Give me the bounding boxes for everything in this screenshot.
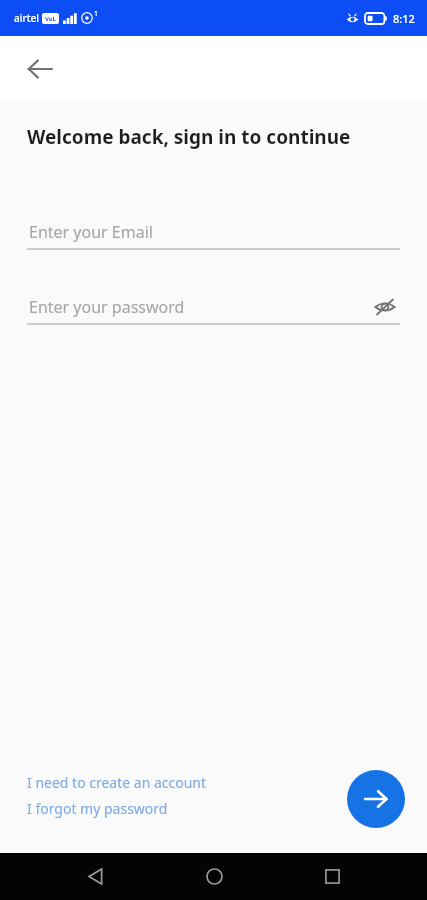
button[interactable]: I need to create an account	[27, 771, 207, 794]
staticText: VoL	[45, 15, 56, 23]
button[interactable]: Continue	[347, 770, 405, 828]
button[interactable]: Back	[71, 853, 119, 900]
button[interactable]: Recent apps	[308, 853, 356, 900]
button[interactable]: I forgot my password	[27, 797, 168, 820]
staticText: I need to create an account	[27, 773, 207, 792]
staticText: Enter your password	[29, 296, 185, 318]
staticText: Enter your Email	[29, 221, 153, 243]
staticText: I forgot my password	[27, 799, 168, 818]
button[interactable]: Show password	[370, 292, 400, 322]
staticText: airtel	[14, 11, 39, 25]
button[interactable]: Enter your Email	[27, 214, 400, 250]
button[interactable]: Enter your password	[27, 289, 400, 325]
button[interactable]: Back	[16, 45, 64, 93]
button[interactable]: Home	[190, 853, 238, 900]
staticText: 8:12	[393, 11, 415, 26]
staticText: 1	[94, 9, 99, 19]
staticText: Welcome back, sign in to continue	[27, 124, 351, 150]
